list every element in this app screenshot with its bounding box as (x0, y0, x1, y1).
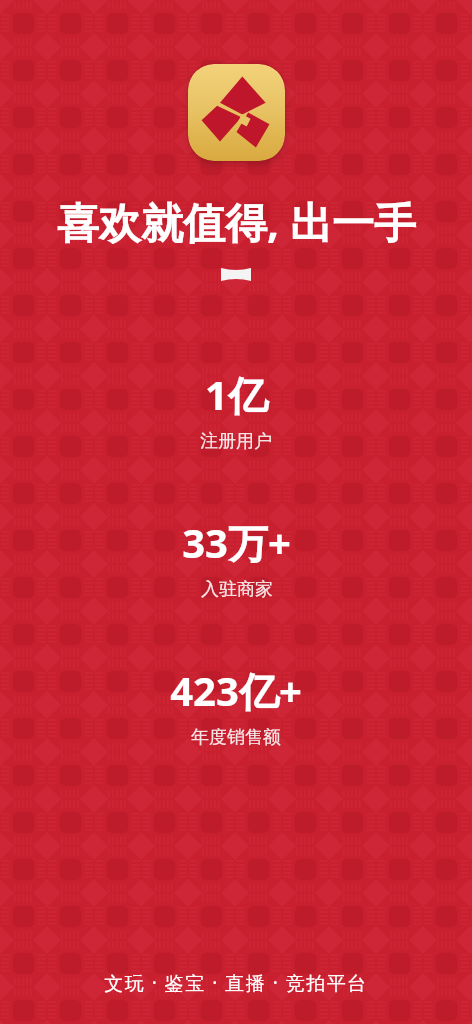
staticText: 33万+ (182, 515, 291, 570)
staticText: 1亿 (205, 367, 268, 422)
staticText: 年度销售额 (191, 726, 281, 749)
staticText: 喜欢就值得, 出一手 (57, 193, 416, 250)
staticText: 注册用户 (200, 430, 272, 453)
staticText: 入驻商家 (201, 578, 273, 601)
staticText: 文玩 · 鉴宝 · 直播 · 竞拍平台 (104, 970, 368, 996)
staticText: 423亿+ (170, 663, 302, 718)
button[interactable]: App icon (188, 64, 285, 161)
